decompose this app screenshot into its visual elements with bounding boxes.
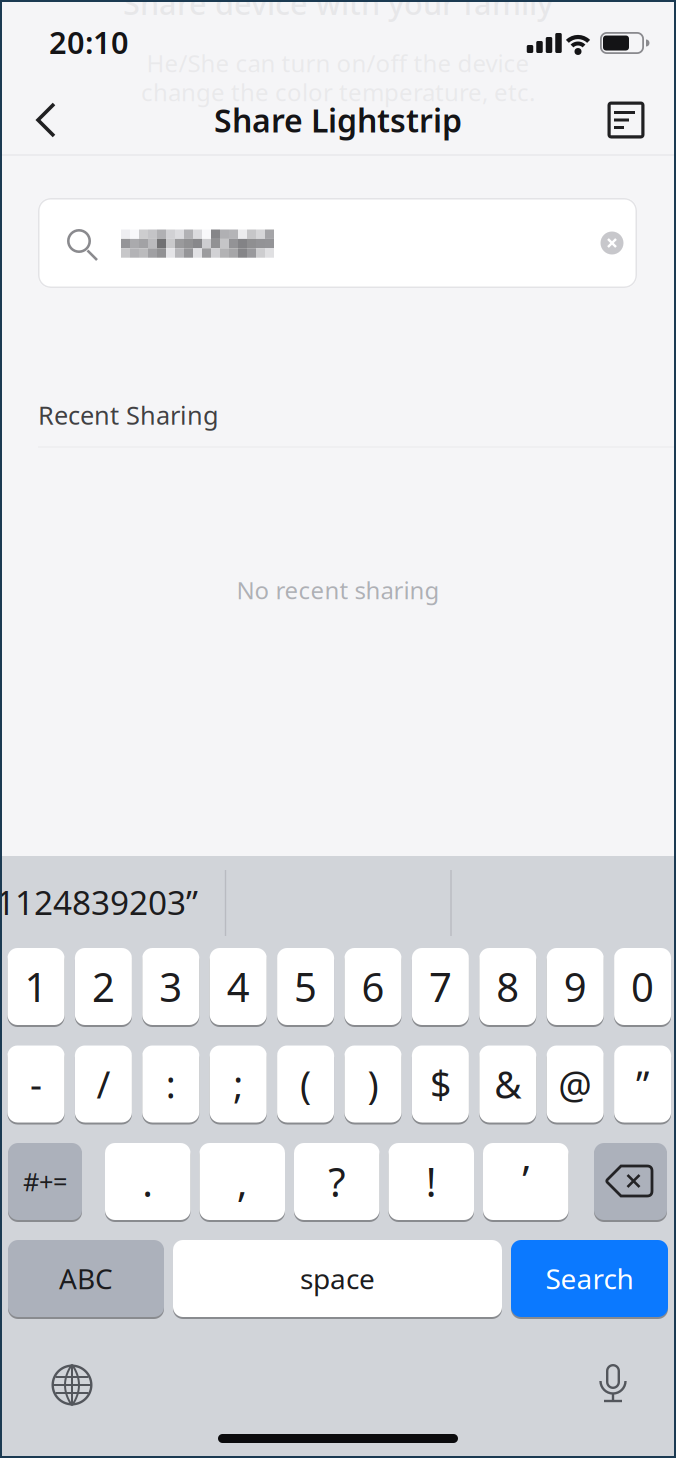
button[interactable]: ( — [277, 1044, 334, 1123]
staticText: #+= — [23, 1165, 67, 1198]
staticText: ( — [300, 1059, 311, 1109]
staticText: : — [166, 1059, 176, 1109]
staticText: ) — [367, 1059, 378, 1109]
staticText: ” — [636, 1059, 649, 1109]
staticText: 2 — [92, 960, 115, 1013]
staticText: 8 — [496, 960, 519, 1013]
staticText: 3 — [159, 960, 182, 1013]
button[interactable]: @ — [547, 1044, 604, 1123]
staticText: ! — [426, 1155, 437, 1208]
button[interactable]: Search account — [38, 198, 637, 288]
staticText: . — [142, 1155, 153, 1208]
staticText: & — [494, 1059, 521, 1109]
staticText: 1124839203” — [0, 880, 198, 924]
staticText: space — [300, 1260, 375, 1297]
staticText: No recent sharing — [236, 574, 439, 606]
button[interactable]: Sharing records — [604, 98, 648, 142]
staticText: $ — [430, 1059, 451, 1109]
staticText: He/She can turn on/off the device — [146, 47, 529, 79]
button[interactable]: 0 — [614, 947, 671, 1026]
staticText: / — [96, 1059, 110, 1109]
button[interactable]: space — [173, 1239, 502, 1318]
staticText: 5 — [294, 960, 317, 1013]
staticText: 1 — [24, 960, 47, 1013]
staticText: ABC — [59, 1260, 113, 1297]
button[interactable]: Dictation — [589, 1361, 637, 1405]
button[interactable]: Back — [28, 98, 72, 142]
button[interactable]: Search — [511, 1239, 668, 1318]
button[interactable]: ” — [614, 1044, 671, 1123]
button[interactable]: ! — [388, 1142, 474, 1221]
button[interactable]: 8 — [479, 947, 536, 1026]
button[interactable]: #+= — [8, 1142, 82, 1221]
button[interactable]: ) — [344, 1044, 401, 1123]
button[interactable]: 3 — [142, 947, 199, 1026]
staticText: ? — [328, 1155, 345, 1208]
staticText: 0 — [631, 960, 654, 1013]
staticText: , — [237, 1155, 248, 1208]
button[interactable]: Clear text — [590, 221, 634, 265]
staticText: 7 — [429, 960, 452, 1013]
button[interactable]: 5 — [277, 947, 334, 1026]
button[interactable]: : — [142, 1044, 199, 1123]
button[interactable]: 1124839203” — [0, 856, 221, 948]
staticText: 4 — [227, 960, 250, 1013]
staticText: - — [30, 1059, 42, 1109]
staticText: Share Lightstrip — [214, 99, 462, 141]
button[interactable]: 9 — [547, 947, 604, 1026]
button[interactable]: . — [105, 1142, 190, 1221]
staticText: Recent Sharing — [38, 398, 219, 432]
staticText: 20:10 — [49, 22, 129, 62]
button[interactable]: Next keyboard — [44, 1357, 100, 1413]
staticText: 6 — [361, 960, 384, 1013]
staticText: Search — [545, 1260, 633, 1297]
button[interactable]: 2 — [75, 947, 132, 1026]
button[interactable]: ABC — [8, 1239, 164, 1318]
button[interactable]: $ — [412, 1044, 469, 1123]
button[interactable]: ? — [294, 1142, 379, 1221]
button[interactable]: 6 — [344, 947, 401, 1026]
button[interactable]: / — [75, 1044, 132, 1123]
button[interactable]: 4 — [210, 947, 267, 1026]
button[interactable]: ’ — [483, 1142, 568, 1221]
button[interactable]: 7 — [412, 947, 469, 1026]
button[interactable]: 1 — [7, 947, 64, 1026]
button[interactable]: Delete — [594, 1142, 667, 1221]
staticText: 9 — [564, 960, 587, 1013]
staticText: @ — [558, 1059, 592, 1109]
button[interactable]: ; — [210, 1044, 267, 1123]
staticText: ; — [233, 1059, 243, 1109]
button[interactable]: & — [479, 1044, 536, 1123]
staticText: ’ — [522, 1153, 529, 1206]
staticText: change the color temperature, etc. — [141, 76, 535, 108]
staticText: Share device with your family — [123, 0, 553, 23]
button[interactable]: , — [199, 1142, 285, 1221]
button[interactable]: - — [7, 1044, 64, 1123]
